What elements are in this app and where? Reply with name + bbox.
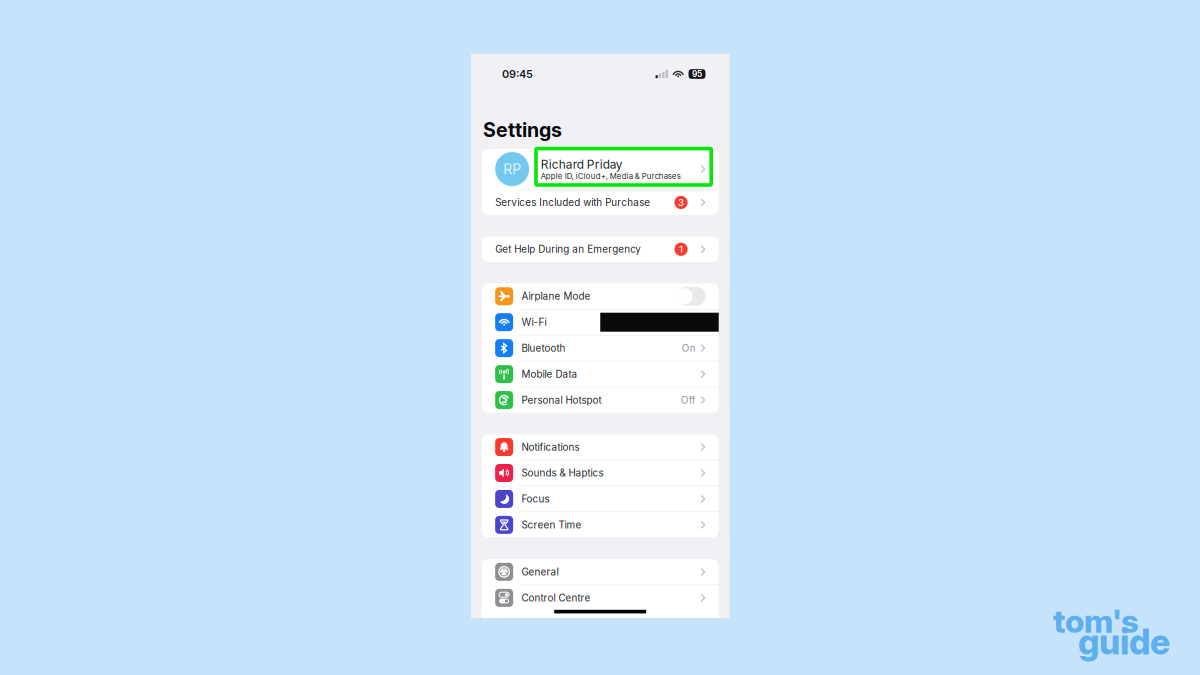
button[interactable]: Wi-Fi bbox=[482, 309, 719, 335]
staticText: 09:45 bbox=[502, 67, 533, 81]
staticText: Services Included with Purchase bbox=[495, 196, 650, 208]
staticText: Personal Hotspot bbox=[521, 394, 601, 406]
staticText: RP bbox=[503, 160, 521, 178]
button[interactable]: Focus bbox=[482, 486, 719, 512]
button[interactable]: Services Included with Purchase bbox=[482, 190, 719, 215]
button[interactable]: Sounds & Haptics bbox=[482, 460, 719, 486]
button[interactable]: Bluetooth bbox=[482, 335, 719, 361]
staticText: Wi-Fi bbox=[521, 316, 546, 328]
button[interactable]: Get Help During an Emergency bbox=[482, 237, 719, 262]
staticText: Sounds & Haptics bbox=[521, 467, 603, 479]
button[interactable]: Screen Time bbox=[482, 512, 719, 538]
staticText: General bbox=[521, 566, 558, 578]
button[interactable]: Airplane Mode bbox=[482, 284, 719, 309]
staticText: Get Help During an Emergency bbox=[495, 243, 641, 255]
button[interactable]: General bbox=[482, 559, 719, 585]
button[interactable]: Personal Hotspot bbox=[482, 387, 719, 413]
button[interactable]: RP bbox=[482, 149, 719, 189]
staticText: Mobile Data bbox=[521, 368, 577, 380]
staticText: On bbox=[682, 342, 696, 354]
staticText: Screen Time bbox=[521, 519, 581, 531]
staticText: Richard Priday bbox=[541, 157, 623, 172]
staticText: guide bbox=[1078, 621, 1170, 663]
button[interactable]: Control Centre bbox=[482, 585, 719, 611]
staticText: Control Centre bbox=[521, 592, 590, 604]
staticText: Bluetooth bbox=[521, 342, 565, 354]
staticText: Focus bbox=[521, 493, 549, 505]
staticText: Off bbox=[681, 394, 696, 406]
staticText: Settings bbox=[483, 118, 562, 142]
staticText: Notifications bbox=[521, 441, 579, 453]
staticText: 3 bbox=[678, 197, 684, 208]
button[interactable]: Notifications bbox=[482, 434, 719, 460]
button[interactable]: Mobile Data bbox=[482, 361, 719, 387]
staticText: tom's bbox=[1053, 602, 1139, 640]
staticText: Apple ID, iCloud+, Media & Purchases bbox=[541, 171, 681, 181]
staticText: 1 bbox=[679, 243, 683, 255]
staticText: 95 bbox=[692, 69, 702, 79]
staticText: Airplane Mode bbox=[521, 290, 590, 302]
